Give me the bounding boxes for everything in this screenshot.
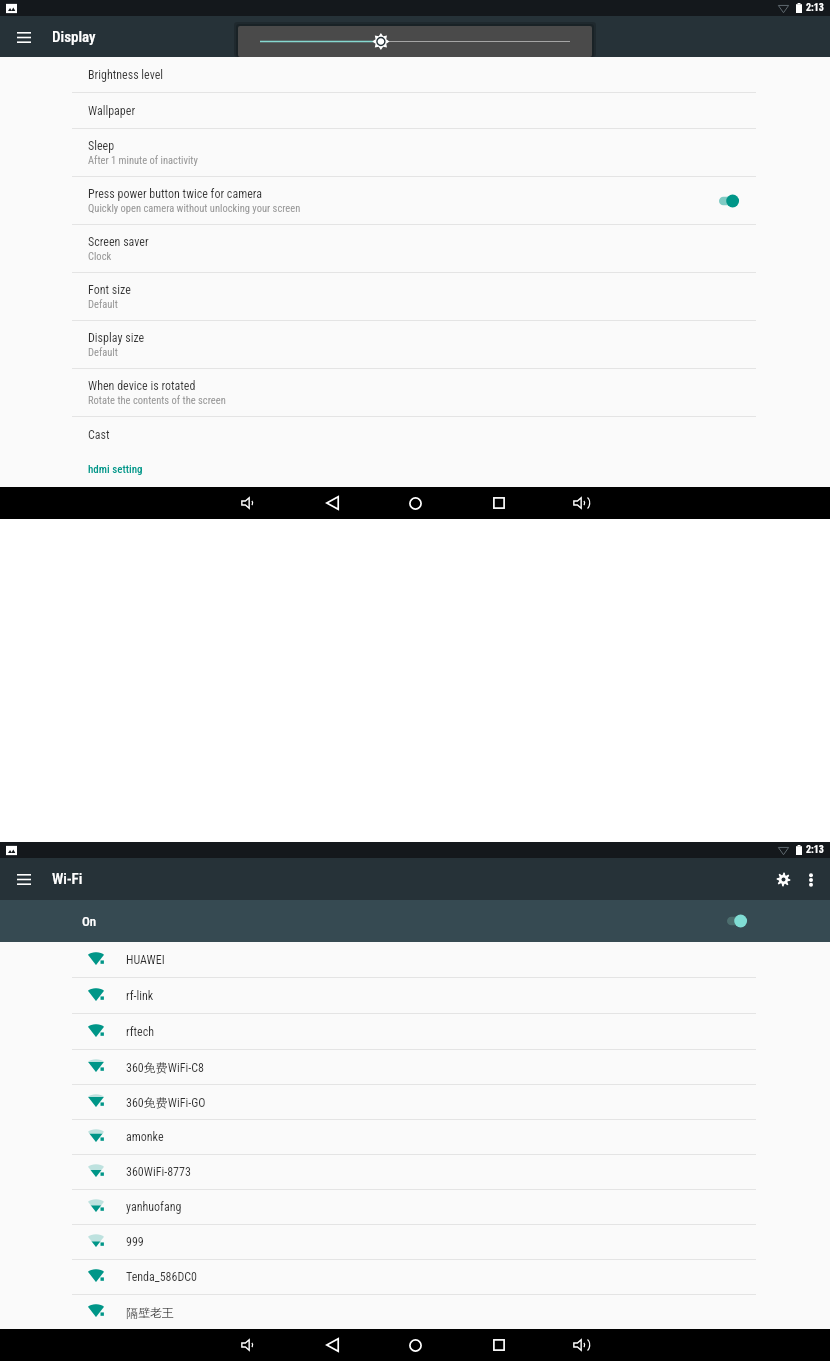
button[interactable]: Sleep	[0, 129, 830, 176]
button[interactable]: Recent apps	[457, 487, 540, 519]
staticText: Screen saver	[88, 235, 149, 249]
staticText: Wi-Fi	[52, 870, 83, 888]
button[interactable]: Font size	[0, 273, 830, 320]
button[interactable]: Display size	[0, 321, 830, 368]
button[interactable]: Toggle	[717, 191, 743, 211]
button[interactable]: Wallpaper	[0, 93, 830, 128]
staticText: rftech	[126, 1025, 155, 1039]
button[interactable]: 360免费WiFi-GO	[0, 1085, 830, 1119]
button[interactable]: 360WiFi-8773	[0, 1155, 830, 1189]
staticText: 360免费WiFi-GO	[126, 1095, 206, 1110]
button[interactable]: Back	[291, 1329, 374, 1361]
staticText: Cast	[88, 428, 110, 442]
staticText: 999	[126, 1235, 144, 1249]
staticText: 360免费WiFi-C8	[126, 1060, 204, 1075]
button[interactable]: Tenda_586DC0	[0, 1260, 830, 1294]
button[interactable]: Brightness level	[0, 57, 830, 92]
button[interactable]: Volume up	[540, 487, 623, 519]
staticText: 2:13	[806, 844, 824, 856]
staticText: On	[82, 914, 97, 929]
staticText: hdmi setting	[88, 463, 143, 476]
staticText: 360WiFi-8773	[126, 1165, 191, 1179]
button[interactable]: yanhuofang	[0, 1190, 830, 1224]
staticText: Press power button twice for camera	[88, 187, 262, 201]
staticText: When device is rotated	[88, 379, 196, 393]
staticText: HUAWEI	[126, 953, 165, 967]
button[interactable]: When device is rotated	[0, 369, 830, 416]
button[interactable]: Press power button twice for camera	[0, 177, 830, 224]
button[interactable]: Brightness slider	[238, 26, 592, 57]
staticText: Default	[88, 346, 118, 358]
button[interactable]: Volume down	[208, 487, 291, 519]
staticText: amonke	[126, 1130, 164, 1144]
button[interactable]: rftech	[0, 1014, 830, 1049]
button[interactable]: Open navigation menu	[4, 859, 44, 899]
button[interactable]: Wi-Fi on/off	[725, 910, 751, 932]
button[interactable]: 999	[0, 1225, 830, 1259]
button[interactable]: Cast	[0, 417, 830, 452]
staticText: Tenda_586DC0	[126, 1270, 198, 1284]
staticText: Clock	[88, 250, 112, 262]
button[interactable]: Open navigation menu	[4, 17, 44, 57]
button[interactable]: hdmi setting	[0, 452, 830, 487]
button[interactable]: Home	[374, 487, 457, 519]
staticText: Wallpaper	[88, 104, 136, 118]
staticText: Rotate the contents of the screen	[88, 394, 226, 406]
staticText: Default	[88, 298, 118, 310]
button[interactable]: Volume down	[208, 1329, 291, 1361]
button[interactable]: Recent apps	[457, 1329, 540, 1361]
staticText: Font size	[88, 283, 131, 297]
button[interactable]: rf-link	[0, 978, 830, 1013]
staticText: Quickly open camera without unlocking yo…	[88, 202, 301, 214]
staticText: Brightness level	[88, 68, 164, 82]
staticText: Display	[52, 28, 96, 46]
staticText: rf-link	[126, 989, 154, 1003]
button[interactable]: Home	[374, 1329, 457, 1361]
staticText: Display size	[88, 331, 145, 345]
button[interactable]: 360免费WiFi-C8	[0, 1050, 830, 1084]
staticText: 2:13	[806, 2, 824, 14]
button[interactable]: More options	[797, 866, 824, 893]
button[interactable]: amonke	[0, 1120, 830, 1154]
button[interactable]: Back	[291, 487, 374, 519]
button[interactable]: HUAWEI	[0, 942, 830, 977]
staticText: yanhuofang	[126, 1200, 182, 1214]
button[interactable]: Volume up	[540, 1329, 623, 1361]
staticText: Sleep	[88, 139, 115, 153]
staticText: After 1 minute of inactivity	[88, 154, 198, 166]
staticText: 隔壁老王	[126, 1305, 174, 1320]
button[interactable]: Wi-Fi settings	[770, 866, 797, 893]
button[interactable]: Screen saver	[0, 225, 830, 272]
button[interactable]: 隔壁老王	[0, 1295, 830, 1329]
